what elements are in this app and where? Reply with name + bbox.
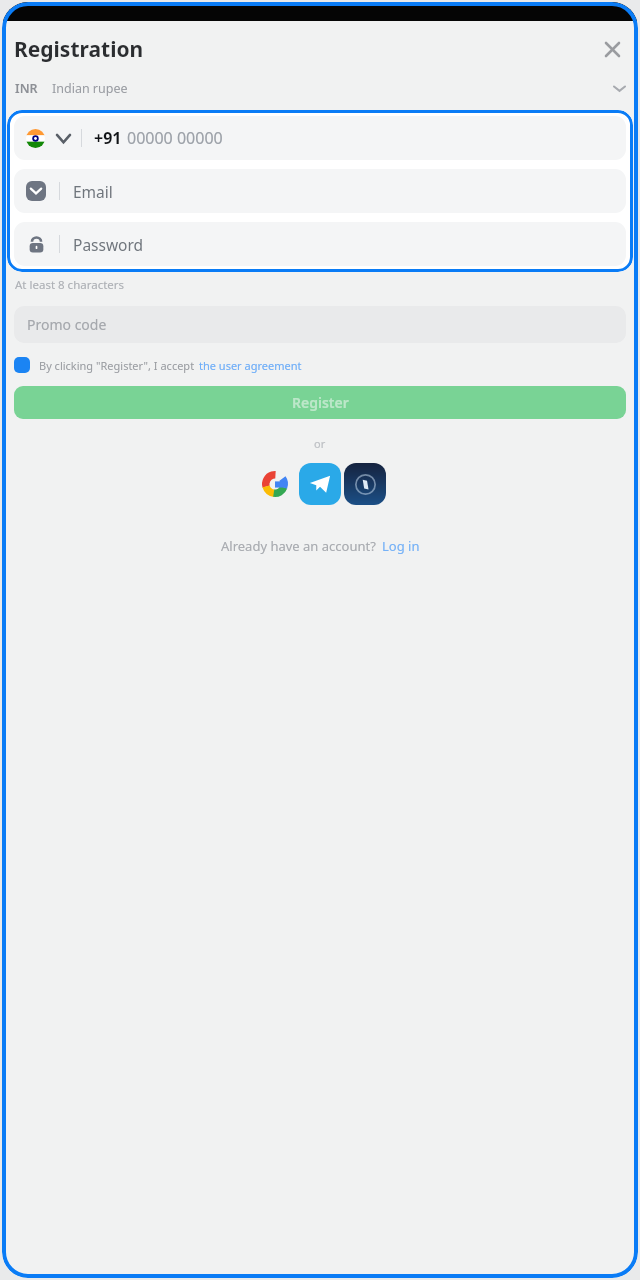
staticText: +91: [94, 127, 122, 149]
button[interactable]: Sign in with Steam: [344, 463, 386, 505]
button[interactable]: Sign in with Telegram: [299, 463, 341, 505]
staticText: By clicking "Register", I accept: [39, 358, 195, 373]
staticText: INR: [15, 80, 38, 97]
staticText: Registration: [14, 35, 144, 64]
staticText: Promo code: [27, 315, 107, 334]
staticText: Indian rupee: [52, 80, 128, 97]
button[interactable]: Sign in with Google: [254, 463, 296, 505]
button[interactable]: Password: [14, 222, 626, 266]
button[interactable]: Register: [14, 386, 626, 419]
button[interactable]: Email: [14, 169, 626, 213]
staticText: Already have an account?: [221, 537, 376, 555]
staticText: Password: [73, 234, 144, 255]
staticText: 00000 00000: [127, 127, 223, 149]
staticText: At least 8 characters: [15, 277, 125, 293]
staticText: or: [314, 436, 326, 451]
button[interactable]: Log in: [382, 537, 420, 555]
button[interactable]: Close: [599, 36, 625, 62]
button[interactable]: Promo code: [14, 306, 626, 343]
button[interactable]: INR: [2, 70, 638, 106]
button[interactable]: +91: [14, 116, 626, 160]
staticText: the user agreement: [199, 358, 302, 373]
button[interactable]: By clicking "Register", I accept: [2, 357, 638, 373]
staticText: Log in: [382, 537, 420, 555]
staticText: Register: [292, 393, 349, 412]
staticText: Email: [73, 181, 113, 202]
